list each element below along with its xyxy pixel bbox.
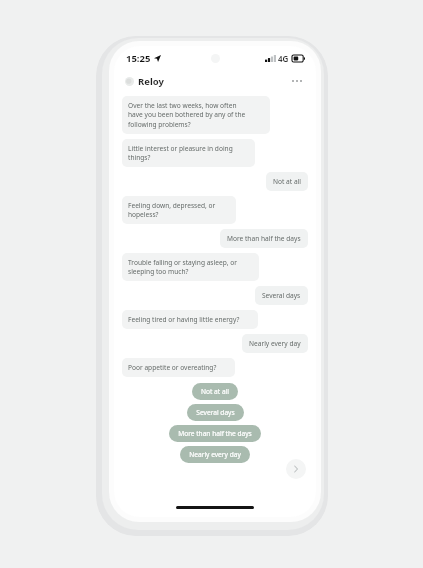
- button[interactable]: Nearly every day: [242, 334, 308, 353]
- staticText: Not at all: [201, 387, 229, 396]
- button[interactable]: Several days: [187, 404, 244, 421]
- staticText: Several days: [196, 408, 235, 417]
- staticText: Poor appetite or overeating?: [128, 363, 217, 372]
- staticText: Several days: [262, 291, 301, 300]
- button[interactable]: Feeling down, depressed, or hopeless?: [122, 196, 236, 224]
- button[interactable]: Nearly every day: [180, 446, 250, 463]
- staticText: Reloy: [138, 75, 164, 88]
- button[interactable]: Poor appetite or overeating?: [122, 358, 235, 377]
- staticText: Nearly every day: [249, 339, 301, 348]
- staticText: Over the last two weeks, how often have …: [128, 101, 246, 129]
- button[interactable]: More than half the days: [169, 425, 261, 442]
- staticText: Feeling tired or having little energy?: [128, 315, 240, 324]
- button[interactable]: Feeling tired or having little energy?: [122, 310, 258, 329]
- button[interactable]: Reloy: [125, 75, 164, 88]
- staticText: Feeling down, depressed, or hopeless?: [128, 201, 216, 219]
- staticText: Nearly every day: [189, 450, 241, 459]
- button[interactable]: Trouble falling or staying asleep, or sl…: [122, 253, 259, 281]
- staticText: More than half the days: [178, 429, 252, 438]
- button[interactable]: More than half the days: [220, 229, 308, 248]
- button[interactable]: Several days: [255, 286, 308, 305]
- staticText: Trouble falling or staying asleep, or sl…: [128, 258, 237, 276]
- button[interactable]: Not at all: [266, 172, 308, 191]
- button[interactable]: Little interest or pleasure in doing thi…: [122, 139, 255, 167]
- button[interactable]: More options: [288, 72, 306, 90]
- button[interactable]: Not at all: [192, 383, 238, 400]
- staticText: Not at all: [273, 177, 301, 186]
- button[interactable]: Next: [286, 459, 306, 479]
- button[interactable]: Over the last two weeks, how often have …: [122, 96, 270, 134]
- staticText: 4G: [278, 53, 289, 64]
- staticText: Little interest or pleasure in doing thi…: [128, 144, 233, 162]
- staticText: 15:25: [126, 52, 151, 65]
- staticText: More than half the days: [227, 234, 301, 243]
